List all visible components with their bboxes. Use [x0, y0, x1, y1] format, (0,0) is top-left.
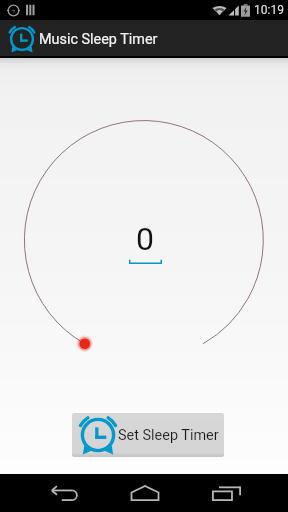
staticText: 0	[136, 220, 154, 258]
staticText: Set Sleep Timer	[118, 427, 219, 444]
button[interactable]: Recent apps	[202, 474, 250, 512]
button[interactable]: Home	[121, 474, 169, 512]
staticText: Music Sleep Timer	[39, 31, 158, 48]
staticText: 10:19	[254, 3, 284, 17]
button[interactable]: Back	[40, 474, 88, 512]
button[interactable]: Set Sleep Timer	[72, 413, 224, 457]
